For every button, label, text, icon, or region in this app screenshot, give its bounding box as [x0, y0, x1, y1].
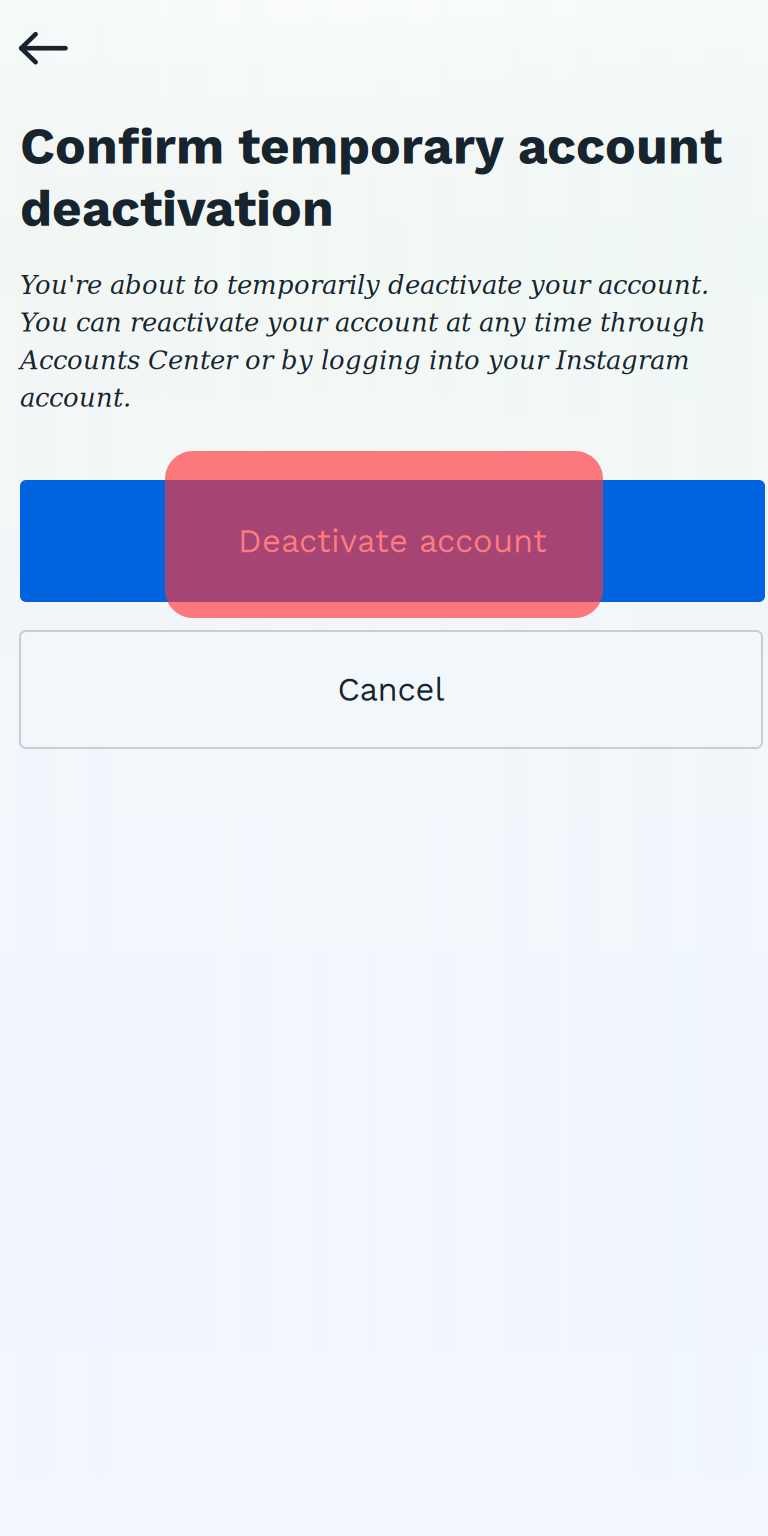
staticText: You're about to temporarily deactivate y… [20, 270, 709, 413]
button[interactable]: Back [9, 24, 76, 73]
staticText: Confirm temporary account deactivation [20, 116, 722, 238]
staticText: Deactivate account [238, 522, 547, 560]
button[interactable]: Deactivate account [20, 480, 765, 602]
button[interactable]: Cancel [20, 631, 762, 748]
staticText: Cancel [337, 670, 444, 709]
